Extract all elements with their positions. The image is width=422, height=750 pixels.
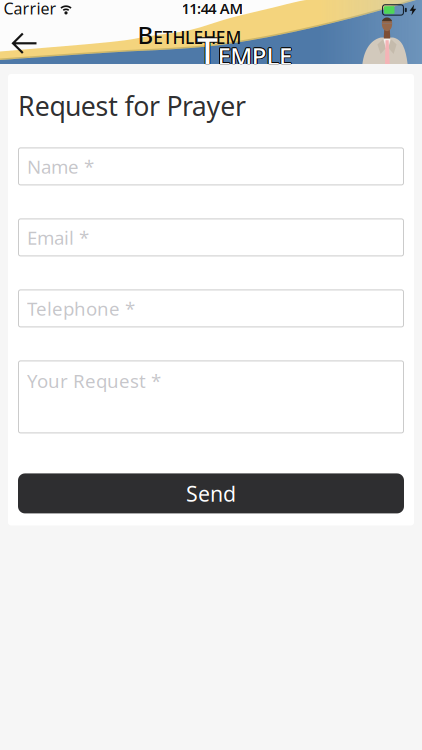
button[interactable]: Back [6,24,50,68]
staticText: Carrier [3,0,56,19]
staticText: Your Request * [27,368,161,393]
staticText: Send [186,479,236,507]
staticText: TEMPLE [197,27,292,76]
staticText: TEMPLE [198,26,293,75]
button[interactable]: Your Request * [18,360,404,433]
staticText: Email * [27,225,89,250]
staticText: 11:44 AM [181,0,243,18]
staticText: TEMPLE [198,25,293,75]
staticText: Request for Prayer [18,88,246,123]
staticText: TEMPLE [198,26,293,76]
button[interactable]: Send [18,473,404,513]
staticText: Name * [27,154,94,179]
staticText: TEMPLE [196,25,291,75]
staticText: TEMPLE [197,26,292,75]
button[interactable]: Telephone * [18,289,404,327]
staticText: BETHLEHEM [138,19,241,51]
staticText: Telephone * [27,296,135,321]
button[interactable]: Email * [18,218,404,256]
staticText: TEMPLE [197,25,292,75]
staticText: TEMPLE [196,26,291,76]
button[interactable]: Name * [18,147,404,185]
staticText: TEMPLE [196,26,291,75]
